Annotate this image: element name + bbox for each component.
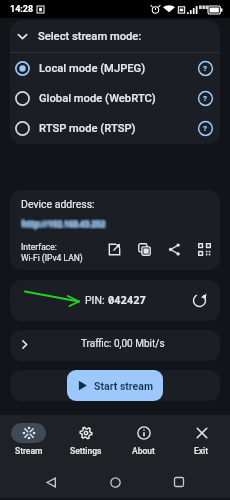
staticText: http://192.168.43.252	[23, 220, 107, 231]
button[interactable]: RTSP mode (RTSP)	[10, 113, 220, 143]
staticText: http://192.168.43.252	[21, 217, 105, 228]
staticText: Interface:	[21, 242, 57, 252]
staticText: Start stream	[94, 380, 153, 392]
button[interactable]: Open in browser	[99, 237, 129, 261]
staticText: http://192.168.43.252	[21, 218, 105, 229]
button[interactable]: Recents	[166, 469, 192, 495]
staticText: 14:28	[10, 4, 34, 15]
staticText: PIN:	[85, 294, 108, 306]
staticText: http://192.168.43.252	[21, 219, 105, 230]
button[interactable]: Share address	[159, 237, 189, 261]
staticText: http://192.168.43.252	[20, 216, 104, 227]
staticText: Wi-Fi (IPv4 LAN)	[21, 253, 83, 263]
button[interactable]: Help	[194, 117, 216, 139]
staticText: http://192.168.43.252	[20, 219, 104, 230]
button[interactable]: Select stream mode:	[10, 20, 220, 52]
staticText: Stream	[15, 446, 43, 456]
staticText: http://192.168.43.252	[22, 218, 106, 229]
staticText: Global mode (WebRTC)	[39, 92, 156, 105]
staticText: http://192.168.43.252	[21, 216, 105, 227]
staticText: Traffic: 0,00 Mbit/s	[81, 338, 165, 350]
staticText: RTSP mode (RTSP)	[39, 122, 136, 135]
button[interactable]: Local mode (MJPEG)	[10, 53, 220, 83]
staticText: http://192.168.43.252	[23, 219, 107, 230]
button[interactable]: Help	[194, 87, 216, 109]
staticText: 042427	[108, 293, 146, 307]
staticText: http://192.168.43.252	[23, 216, 107, 227]
staticText: http://192.168.43.252	[22, 219, 106, 230]
staticText: Select stream mode:	[38, 30, 142, 43]
staticText: http://192.168.43.252	[23, 218, 107, 229]
button[interactable]: Stream	[0, 415, 57, 466]
button[interactable]: Help	[194, 57, 216, 79]
staticText: Exit	[194, 446, 209, 456]
staticText: http://192.168.43.252	[24, 218, 108, 229]
staticText: http://192.168.43.252	[24, 220, 108, 231]
staticText: http://192.168.43.252	[22, 220, 106, 231]
staticText: http://192.168.43.252	[22, 217, 106, 228]
staticText: http://192.168.43.252	[21, 220, 105, 231]
button[interactable]: Settings	[57, 415, 114, 466]
staticText: http://192.168.43.252	[24, 216, 108, 227]
button[interactable]: Copy address	[129, 237, 159, 261]
button[interactable]: Start stream	[67, 370, 163, 401]
button[interactable]: Refresh PIN	[188, 289, 210, 311]
staticText: ?	[203, 64, 207, 73]
button[interactable]: About	[114, 415, 172, 466]
button[interactable]: Show QR code	[189, 237, 219, 261]
button[interactable]: Exit	[172, 415, 230, 466]
button[interactable]: Home	[102, 469, 128, 495]
staticText: ?	[203, 94, 207, 103]
staticText: http://192.168.43.252	[20, 217, 104, 228]
button[interactable]: PIN:	[10, 280, 220, 319]
staticText: Settings	[70, 446, 102, 456]
button[interactable]: Back	[38, 469, 64, 495]
staticText: http://192.168.43.252	[24, 217, 108, 228]
staticText: http://192.168.43.252	[22, 216, 106, 227]
staticText: http://192.168.43.252	[23, 217, 107, 228]
staticText: http://192.168.43.252	[20, 220, 104, 231]
staticText: ?	[203, 124, 207, 133]
staticText: Device address:	[21, 198, 95, 210]
button[interactable]: Global mode (WebRTC)	[10, 83, 220, 113]
staticText: http://192.168.43.252	[24, 219, 108, 230]
button[interactable]: Traffic: 0,00 Mbit/s	[10, 330, 220, 358]
staticText: Local mode (MJPEG)	[39, 62, 146, 75]
staticText: http://192.168.43.252	[20, 218, 104, 229]
staticText: About	[132, 446, 155, 456]
